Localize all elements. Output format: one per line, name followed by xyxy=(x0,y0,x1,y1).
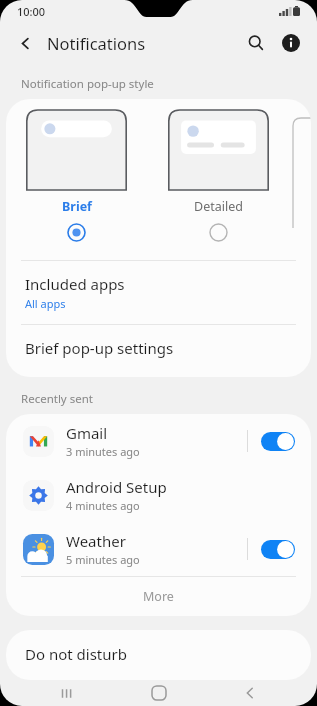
button[interactable]: Weather xyxy=(6,522,311,576)
button[interactable]: More xyxy=(6,577,311,616)
staticText: 10:00 xyxy=(17,4,46,19)
button[interactable]: Detailed xyxy=(147,110,289,242)
staticText: 5 minutes ago xyxy=(66,552,140,567)
staticText: Weather xyxy=(66,531,126,551)
button[interactable]: Gmail xyxy=(6,414,311,468)
button[interactable]: Search xyxy=(240,27,272,59)
staticText: Brief pop-up settings xyxy=(25,338,174,358)
staticText: Included apps xyxy=(25,274,125,294)
staticText: Gmail xyxy=(66,423,108,443)
staticText: More xyxy=(143,588,174,605)
staticText: 3 minutes ago xyxy=(66,444,140,459)
button[interactable]: Information xyxy=(275,27,307,59)
button[interactable]: Toggle Weather notifications xyxy=(259,534,297,564)
button[interactable]: Back xyxy=(8,26,42,60)
staticText: Android Setup xyxy=(66,477,167,497)
button[interactable]: Do not disturb xyxy=(6,630,311,680)
staticText: Notifications xyxy=(47,32,146,54)
staticText: Notification pop-up style xyxy=(21,76,154,92)
staticText: Recently sent xyxy=(21,391,93,407)
button[interactable]: Brief xyxy=(6,110,147,242)
button[interactable]: Toggle Gmail notifications xyxy=(259,426,297,456)
button[interactable]: Back xyxy=(226,680,274,706)
button[interactable]: Home xyxy=(135,680,183,706)
staticText: 4 minutes ago xyxy=(66,498,140,513)
button[interactable]: Recent apps xyxy=(43,680,91,706)
button[interactable]: Brief pop-up settings xyxy=(6,325,311,371)
staticText: Detailed xyxy=(194,198,243,215)
staticText: All apps xyxy=(25,296,66,311)
staticText: Do not disturb xyxy=(25,644,127,664)
button[interactable]: Android Setup xyxy=(6,468,311,522)
staticText: Brief xyxy=(62,198,92,215)
button[interactable]: Included apps xyxy=(6,261,311,324)
